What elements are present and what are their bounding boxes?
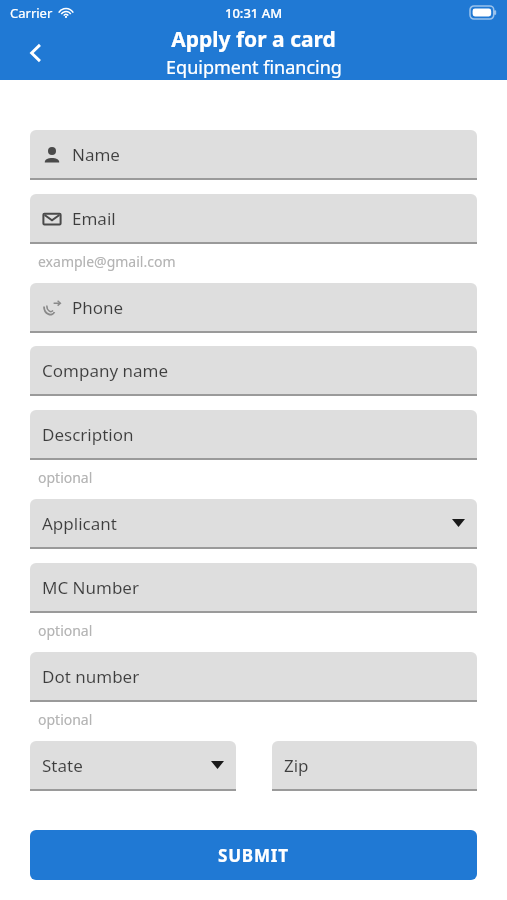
staticText: Description xyxy=(42,423,134,446)
button[interactable]: Phone xyxy=(30,283,477,333)
staticText: Phone xyxy=(72,296,124,319)
button[interactable]: State xyxy=(30,741,236,791)
staticText: Name xyxy=(72,143,120,166)
button[interactable]: SUBMIT xyxy=(30,830,477,880)
button[interactable]: Applicant xyxy=(30,499,477,549)
staticText: Dot number xyxy=(42,665,140,688)
button[interactable]: Email xyxy=(30,194,477,244)
staticText: MC Number xyxy=(42,576,139,599)
staticText: 10:31 AM xyxy=(225,4,283,22)
staticText: Applicant xyxy=(42,512,117,535)
button[interactable]: Company name xyxy=(30,346,477,396)
staticText: SUBMIT xyxy=(218,844,289,867)
staticText: optional xyxy=(38,621,93,640)
staticText: Apply for a card xyxy=(171,25,336,54)
button[interactable]: Name xyxy=(30,130,477,180)
staticText: example@gmail.com xyxy=(38,252,176,271)
staticText: Zip xyxy=(284,754,309,777)
staticText: optional xyxy=(38,468,93,487)
button[interactable]: Zip xyxy=(272,741,477,791)
staticText: Equipment financing xyxy=(166,55,342,80)
button[interactable]: Back xyxy=(14,31,58,75)
button[interactable]: MC Number xyxy=(30,563,477,613)
staticText: Email xyxy=(72,207,116,230)
staticText: Carrier xyxy=(10,4,53,22)
button[interactable]: Description xyxy=(30,410,477,460)
button[interactable]: Dot number xyxy=(30,652,477,702)
staticText: Company name xyxy=(42,359,169,382)
staticText: optional xyxy=(38,710,93,729)
staticText: State xyxy=(42,754,83,777)
